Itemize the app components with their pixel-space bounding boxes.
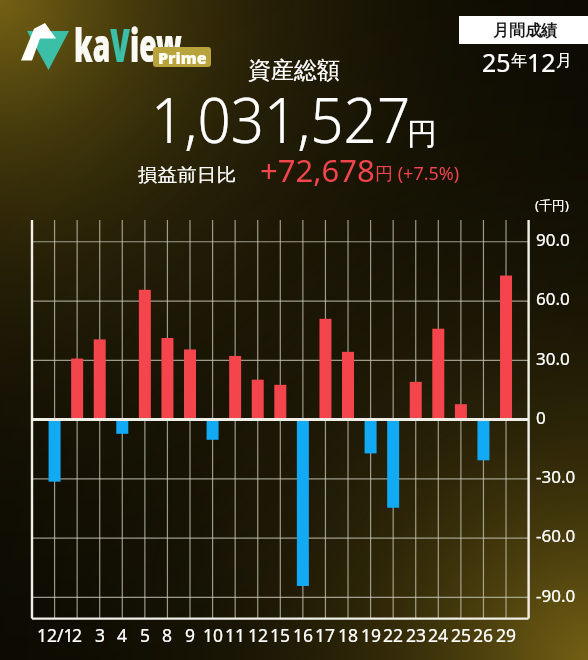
staticText: 90.0 [536, 228, 570, 251]
staticText: 月 [556, 51, 572, 71]
staticText: 2 [72, 623, 83, 647]
staticText: 年 [511, 51, 527, 71]
staticText: Prime [158, 47, 207, 67]
staticText: 26 [473, 623, 494, 647]
staticText: 4 [117, 623, 128, 647]
staticText: 19 [361, 623, 382, 647]
staticText: iew [130, 13, 182, 76]
staticText: 23 [406, 623, 427, 647]
staticText: 15 [270, 623, 291, 647]
staticText: 30.0 [536, 347, 570, 370]
staticText: 25 [482, 45, 511, 73]
staticText: 損益前日比 [138, 164, 236, 187]
staticText: (+7.5%) [393, 161, 460, 186]
staticText: V [110, 13, 130, 76]
staticText: 円 [407, 115, 437, 153]
staticText: 8 [162, 623, 173, 647]
staticText: (千円) [535, 196, 569, 214]
staticText: 10 [203, 623, 224, 647]
button[interactable]: kaView logo [20, 23, 70, 70]
staticText: 5 [140, 623, 151, 647]
staticText: 1,031,527 [151, 77, 410, 161]
staticText: -90.0 [536, 584, 576, 607]
staticText: 円 [375, 163, 393, 186]
button[interactable]: 月間成績 [459, 16, 588, 44]
staticText: 12 [527, 45, 556, 73]
staticText: 12/1 [37, 623, 74, 647]
staticText: 資産総額 [248, 56, 340, 84]
staticText: 24 [428, 623, 449, 647]
staticText: -30.0 [536, 465, 576, 488]
staticText: +72,678 [260, 149, 375, 191]
staticText: -60.0 [536, 524, 576, 547]
staticText: 60.0 [536, 287, 570, 310]
staticText: ka [74, 13, 110, 76]
staticText: 29 [496, 623, 517, 647]
staticText: 18 [338, 623, 359, 647]
staticText: 22 [383, 623, 404, 647]
staticText: 17 [315, 623, 336, 647]
staticText: 12 [248, 623, 269, 647]
staticText: 11 [225, 623, 246, 647]
staticText: 16 [293, 623, 314, 647]
staticText: 3 [95, 623, 106, 647]
staticText: 25 [451, 623, 472, 647]
staticText: 9 [185, 623, 196, 647]
staticText: 0 [536, 406, 546, 429]
staticText: 月間成績 [493, 21, 557, 41]
